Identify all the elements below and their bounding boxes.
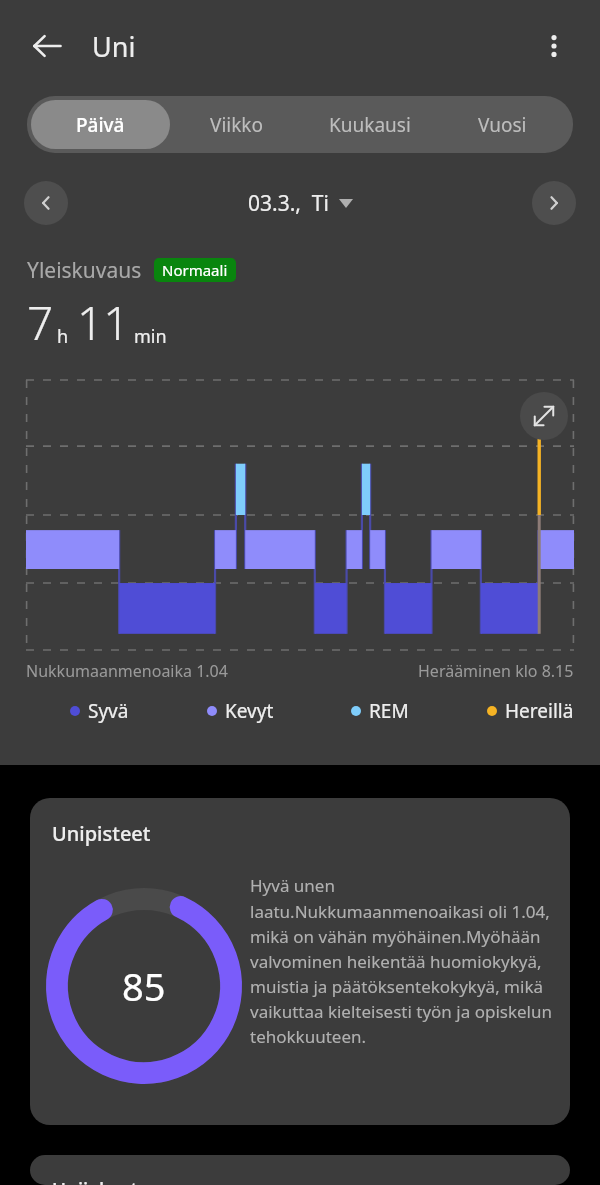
button[interactable]: Vuosi — [436, 100, 569, 149]
staticText: h — [57, 324, 69, 349]
staticText: min — [134, 324, 167, 349]
staticText: Hereillä — [505, 698, 574, 724]
staticText: REM — [369, 698, 409, 724]
staticText: 03.3., Ti — [248, 189, 329, 218]
button[interactable]: Unijaksot — [30, 1155, 570, 1185]
staticText: Vuosi — [478, 112, 527, 138]
button[interactable]: More options — [526, 18, 582, 74]
button[interactable]: Previous day — [24, 181, 68, 225]
button[interactable]: 03.3., Ti — [248, 189, 353, 218]
staticText: 85 — [122, 960, 166, 1012]
staticText: Normaali — [162, 260, 228, 280]
staticText: Unijaksot — [52, 1177, 138, 1185]
staticText: Viikko — [210, 112, 263, 138]
staticText: 11 — [77, 291, 130, 354]
button[interactable]: Kuukausi — [303, 100, 436, 149]
button[interactable]: Viikko — [170, 100, 303, 149]
staticText: Päivä — [76, 112, 125, 138]
button[interactable]: Päivä — [31, 100, 170, 149]
button[interactable]: Unipisteet — [30, 798, 570, 1125]
staticText: Uni — [92, 28, 136, 65]
staticText: Kuukausi — [329, 112, 411, 138]
staticText: Kevyt — [225, 698, 274, 724]
button[interactable]: Back — [18, 17, 76, 75]
staticText: 7 — [27, 291, 54, 354]
button[interactable]: Next day — [532, 181, 576, 225]
staticText: Hyvä unen laatu.Nukkumaanmenoaikasi oli … — [250, 874, 552, 1048]
button[interactable]: Expand chart — [520, 392, 568, 440]
staticText: Syvä — [88, 698, 129, 724]
staticText: Unipisteet — [52, 820, 151, 847]
staticText: Yleiskuvaus — [27, 256, 142, 285]
staticText: Herääminen klo 8.15 — [418, 660, 574, 682]
staticText: Nukkumaanmenoaika 1.04 — [26, 660, 228, 682]
